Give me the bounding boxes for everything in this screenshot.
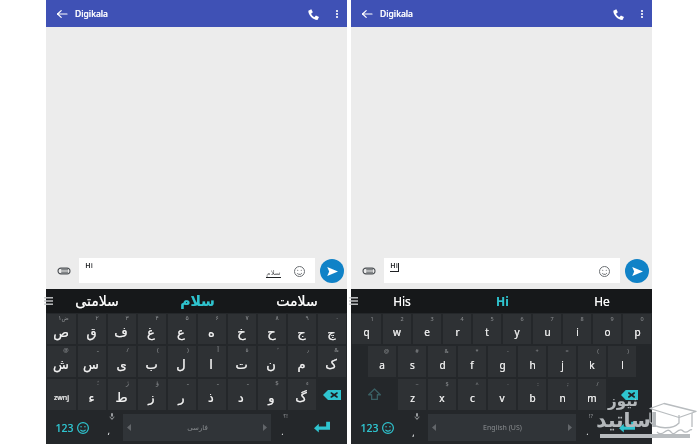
button[interactable]: سلامت <box>247 289 347 313</box>
button[interactable]: n <box>548 379 576 410</box>
button[interactable]: Send <box>625 259 649 283</box>
button[interactable]: ا <box>198 346 226 377</box>
button[interactable]: Enter <box>602 411 652 444</box>
button[interactable]: ل <box>168 346 196 377</box>
button[interactable]: Keyboard menu <box>41 294 55 308</box>
button[interactable]: Backspace <box>608 379 651 410</box>
button[interactable]: غ <box>138 314 166 344</box>
button[interactable]: w <box>383 314 411 344</box>
button[interactable]: m <box>578 379 606 410</box>
button[interactable]: d <box>428 346 456 377</box>
staticText: ء <box>88 390 95 405</box>
button[interactable]: s <box>398 346 426 377</box>
button[interactable]: ت <box>228 346 256 377</box>
staticText: ۵ <box>185 314 189 321</box>
button[interactable]: ک <box>318 346 346 377</box>
button[interactable]: . <box>272 411 297 444</box>
staticText: · <box>507 380 509 387</box>
button[interactable]: ب <box>138 346 166 377</box>
staticText: m <box>587 391 597 405</box>
button[interactable]: Hi <box>452 289 552 313</box>
button[interactable]: y <box>503 314 531 344</box>
button[interactable]: ZWNJ <box>47 379 76 410</box>
button[interactable]: سلام <box>147 289 247 313</box>
button[interactable]: گ <box>288 379 316 410</box>
button[interactable]: More options <box>633 5 651 23</box>
button[interactable]: Call <box>608 4 628 24</box>
button[interactable]: Shift <box>352 379 396 410</box>
button[interactable]: ط <box>108 379 136 410</box>
button[interactable]: Space <box>428 414 576 441</box>
button[interactable]: ع <box>168 314 196 344</box>
button[interactable]: His <box>351 289 452 313</box>
button[interactable]: o <box>593 314 621 344</box>
button[interactable]: ف <box>108 314 136 344</box>
button[interactable]: , <box>402 411 427 444</box>
button[interactable]: Send <box>320 259 344 283</box>
button[interactable]: ی <box>108 346 136 377</box>
button[interactable]: م <box>288 346 316 377</box>
button[interactable]: c <box>458 379 486 410</box>
button[interactable]: r <box>443 314 471 344</box>
button[interactable]: ح <box>258 314 286 344</box>
button[interactable]: ه <box>198 314 226 344</box>
button[interactable]: ر <box>168 379 196 410</box>
button[interactable]: Symbols and emoji <box>351 411 402 444</box>
button[interactable]: س <box>78 346 106 377</box>
button[interactable]: ص <box>47 314 76 344</box>
button[interactable]: ذ <box>198 379 226 410</box>
button[interactable]: ج <box>288 314 316 344</box>
button[interactable]: g <box>488 346 516 377</box>
button[interactable]: Attach file <box>55 262 73 280</box>
staticText: ة <box>245 346 249 353</box>
button[interactable]: ق <box>78 314 106 344</box>
button[interactable]: . <box>577 411 602 444</box>
button[interactable]: q <box>352 314 381 344</box>
button[interactable]: He <box>552 289 652 313</box>
staticText: ۰ <box>335 314 339 321</box>
button[interactable]: a <box>368 346 396 377</box>
button[interactable]: سلامتی <box>46 289 147 313</box>
button[interactable]: Space <box>123 414 271 441</box>
button[interactable]: ، <box>97 411 122 444</box>
button[interactable]: و <box>258 379 286 410</box>
button[interactable]: Symbols and emoji <box>46 411 97 444</box>
button[interactable]: Enter <box>297 411 347 444</box>
button[interactable]: ن <box>258 346 286 377</box>
button[interactable]: v <box>488 379 516 410</box>
button[interactable]: More options <box>328 5 346 23</box>
button[interactable]: د <box>228 379 256 410</box>
staticText: / <box>596 380 599 387</box>
button[interactable]: t <box>473 314 501 344</box>
button[interactable]: j <box>548 346 576 377</box>
button[interactable]: ش <box>47 346 76 377</box>
button[interactable]: f <box>458 346 486 377</box>
button[interactable]: ز <box>138 379 166 410</box>
button[interactable]: b <box>518 379 546 410</box>
button[interactable]: Emoji <box>596 263 612 279</box>
button[interactable]: Emoji <box>291 263 307 279</box>
button[interactable]: e <box>413 314 441 344</box>
button[interactable]: Back <box>53 5 70 22</box>
button[interactable]: Backspace <box>318 379 346 410</box>
button[interactable]: ء <box>78 379 106 410</box>
button[interactable]: h <box>518 346 546 377</box>
button[interactable]: Attach file <box>360 262 378 280</box>
button[interactable]: p <box>623 314 651 344</box>
button[interactable]: Keyboard menu <box>346 294 360 308</box>
button[interactable]: z <box>398 379 426 410</box>
button[interactable]: i <box>563 314 591 344</box>
button[interactable]: Call <box>303 4 323 24</box>
staticText: $ <box>445 380 449 387</box>
staticText: ۴ <box>155 314 159 321</box>
button[interactable]: l <box>608 346 636 377</box>
button[interactable]: k <box>578 346 606 377</box>
button[interactable]: چ <box>318 314 346 344</box>
button[interactable]: x <box>428 379 456 410</box>
button[interactable]: خ <box>228 314 256 344</box>
staticText: Hi <box>390 261 398 271</box>
button[interactable]: u <box>533 314 561 344</box>
staticText: l <box>621 358 624 372</box>
button[interactable]: Back <box>358 5 375 22</box>
staticText: م <box>297 357 306 372</box>
